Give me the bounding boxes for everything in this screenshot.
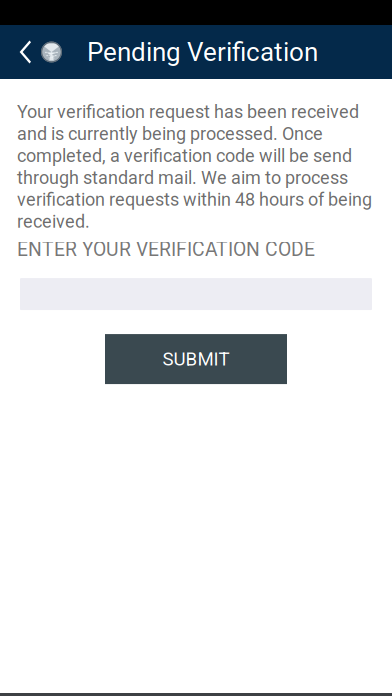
staticText: SUBMIT xyxy=(162,348,229,370)
staticText: Your verification request has been recei… xyxy=(17,101,372,233)
button[interactable]: SUBMIT xyxy=(105,334,287,384)
staticText: ENTER YOUR VERIFICATION CODE xyxy=(17,235,315,264)
staticText: Pending Verification xyxy=(87,37,318,67)
button[interactable]: Back xyxy=(0,25,72,79)
